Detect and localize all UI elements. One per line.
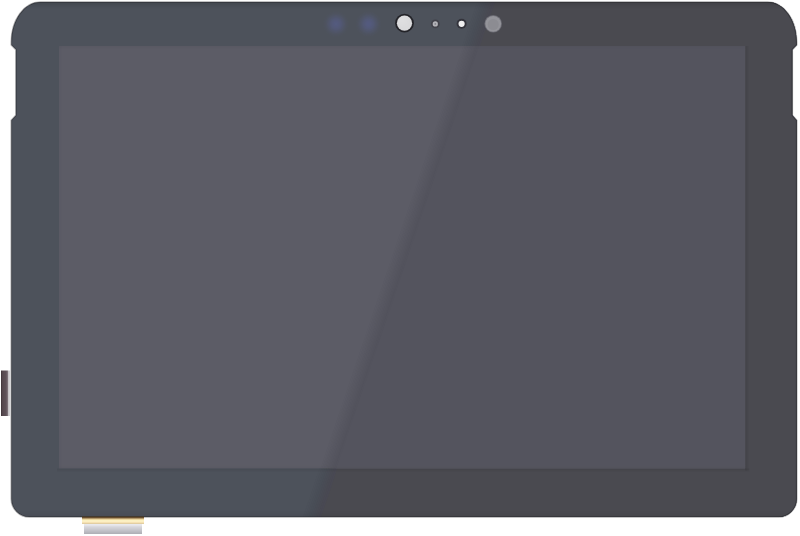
button[interactable]: Tablet LCD screen assembly product photo: [0, 0, 800, 536]
